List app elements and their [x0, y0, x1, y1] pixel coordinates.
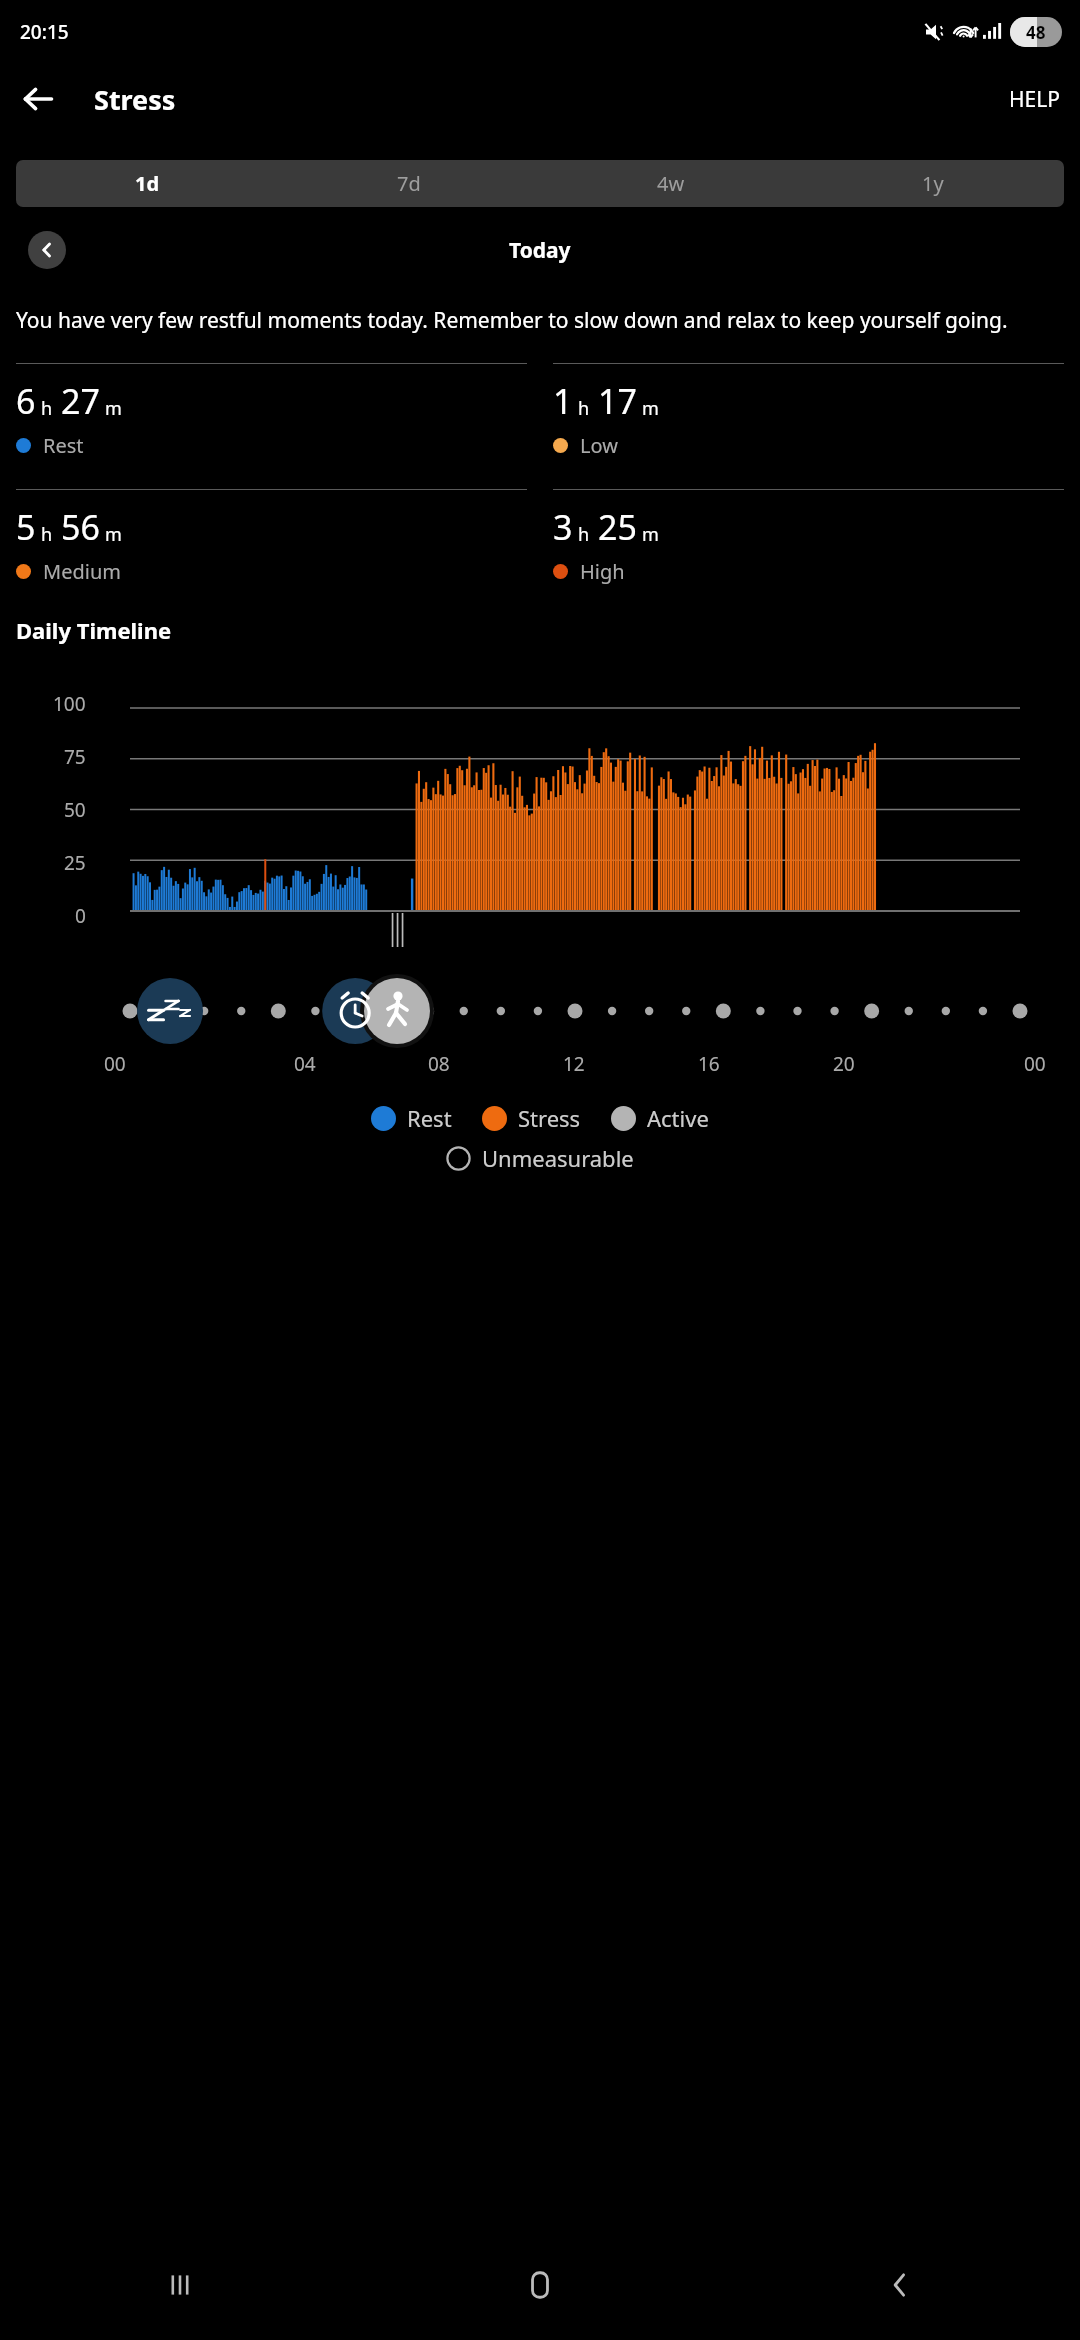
staticText: 04 — [294, 1051, 316, 1077]
staticText: 3 — [553, 504, 573, 550]
staticText: h — [578, 396, 590, 421]
button[interactable]: Recents — [0, 2230, 360, 2340]
button[interactable]: 3 — [553, 489, 1064, 585]
staticText: 6 — [16, 378, 36, 424]
staticText: Medium — [43, 558, 121, 585]
staticText: 16 — [698, 1051, 720, 1077]
staticText: 5 — [16, 504, 36, 550]
staticText: Active — [647, 1103, 709, 1133]
button[interactable]: Previous day — [28, 231, 66, 269]
staticText: m — [642, 396, 659, 421]
staticText: You have very few restful moments today.… — [16, 306, 1064, 335]
staticText: 4w — [657, 170, 685, 197]
staticText: Rest — [43, 432, 84, 459]
staticText: 50 — [64, 797, 86, 823]
staticText: 20 — [833, 1051, 855, 1077]
staticText: 25 — [64, 850, 86, 876]
button[interactable]: Unmeasurable — [446, 1143, 634, 1173]
staticText: Daily Timeline — [16, 615, 172, 645]
staticText: Stress — [94, 81, 176, 118]
staticText: 75 — [64, 744, 86, 770]
button[interactable]: HELP — [989, 75, 1080, 124]
staticText: m — [105, 522, 122, 547]
staticText: High — [580, 558, 625, 585]
staticText: Rest — [407, 1103, 452, 1133]
button[interactable]: Rest — [371, 1103, 452, 1133]
button[interactable]: Home — [360, 2230, 720, 2340]
button[interactable]: 1d — [16, 160, 278, 207]
button[interactable]: Back — [720, 2230, 1080, 2340]
button[interactable]: 6 — [16, 363, 527, 459]
staticText: 100 — [53, 691, 86, 717]
button[interactable]: Back — [10, 71, 66, 127]
staticText: 17 — [598, 378, 637, 424]
button[interactable]: 1 — [553, 363, 1064, 459]
staticText: 1y — [922, 170, 944, 197]
staticText: 12 — [563, 1051, 585, 1077]
staticText: 20:15 — [20, 19, 69, 45]
staticText: h — [41, 396, 53, 421]
staticText: h — [41, 522, 53, 547]
staticText: 27 — [61, 378, 100, 424]
staticText: 08 — [428, 1051, 450, 1077]
staticText: Today — [509, 236, 571, 265]
staticText: 25 — [598, 504, 637, 550]
staticText: 1d — [135, 170, 160, 197]
button[interactable]: 7d — [278, 160, 540, 207]
staticText: Unmeasurable — [482, 1143, 634, 1173]
staticText: Stress — [518, 1103, 581, 1133]
staticText: 56 — [61, 504, 100, 550]
staticText: 7d — [397, 170, 421, 197]
staticText: 00 — [104, 1051, 126, 1077]
button[interactable]: Stress — [482, 1103, 581, 1133]
button[interactable]: 4w — [540, 160, 802, 207]
staticText: HELP — [1009, 85, 1060, 114]
staticText: Low — [580, 432, 618, 459]
staticText: m — [105, 396, 122, 421]
staticText: m — [642, 522, 659, 547]
staticText: 0 — [75, 903, 86, 929]
staticText: h — [578, 522, 590, 547]
staticText: 00 — [1024, 1051, 1046, 1077]
button[interactable]: 1y — [802, 160, 1064, 207]
staticText: 1 — [553, 378, 573, 424]
button[interactable]: 5 — [16, 489, 527, 585]
button[interactable]: Active — [611, 1103, 709, 1133]
staticText: 48 — [1026, 21, 1046, 44]
